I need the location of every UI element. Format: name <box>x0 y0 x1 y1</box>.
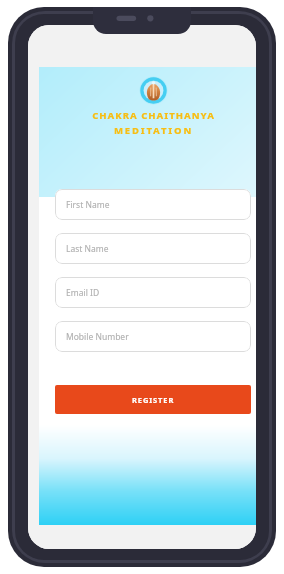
button[interactable]: Mobile Number <box>55 321 251 352</box>
other: Chakra Chaithanya Meditation logo <box>139 76 168 105</box>
button[interactable]: First Name <box>55 189 251 220</box>
staticText: Email ID <box>66 287 100 299</box>
staticText: MEDITATION <box>114 124 193 137</box>
staticText: Mobile Number <box>66 331 129 343</box>
button[interactable]: Email ID <box>55 277 251 308</box>
staticText: Last Name <box>66 243 109 255</box>
staticText: REGISTER <box>132 395 175 405</box>
button[interactable]: REGISTER <box>55 385 251 414</box>
staticText: First Name <box>66 199 110 211</box>
button[interactable]: Last Name <box>55 233 251 264</box>
staticText: CHAKRA CHAITHANYA <box>92 109 215 122</box>
